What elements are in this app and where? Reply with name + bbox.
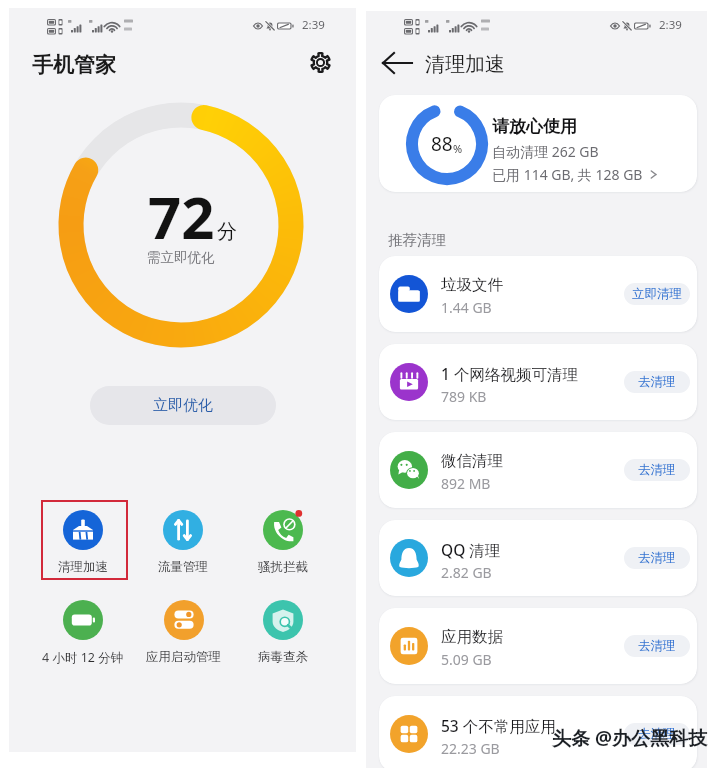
staticText: 需立即优化 <box>147 249 215 266</box>
staticText: % <box>453 141 463 156</box>
button[interactable]: 去清理 <box>624 635 690 657</box>
button[interactable]: 4 小时 12 分钟 <box>35 600 131 676</box>
staticText: 立即清理 <box>632 286 682 302</box>
button[interactable]: 去清理 <box>624 723 690 745</box>
button[interactable]: 去清理 <box>624 371 690 393</box>
button[interactable]: 应用启动管理 <box>135 600 231 676</box>
staticText: 72 <box>148 177 215 256</box>
button[interactable]: 立即清理 <box>624 283 690 305</box>
staticText: 4 小时 12 分钟 <box>42 649 124 666</box>
button[interactable]: 1 个网络视频可清理 <box>379 344 697 420</box>
button[interactable]: 应用数据 <box>379 608 697 684</box>
staticText: 手机管家 <box>32 52 116 78</box>
staticText: 垃圾文件 <box>441 275 503 295</box>
staticText: 22.23 GB <box>441 739 500 758</box>
staticText: 892 MB <box>441 474 491 493</box>
button[interactable]: 53 个不常用应用 <box>379 696 697 768</box>
button[interactable]: 去清理 <box>624 459 690 481</box>
button[interactable]: 骚扰拦截 <box>235 510 331 586</box>
staticText: 立即优化 <box>153 396 213 415</box>
button[interactable]: Settings <box>300 42 340 82</box>
staticText: 应用数据 <box>441 627 503 647</box>
staticText: 去清理 <box>638 638 676 654</box>
button[interactable]: 去清理 <box>624 547 690 569</box>
staticText: 去清理 <box>638 726 676 742</box>
button[interactable]: Back <box>373 39 421 87</box>
staticText: 应用启动管理 <box>146 649 221 665</box>
staticText: 2:39 <box>659 17 682 33</box>
staticText: 789 KB <box>441 387 487 406</box>
staticText: 1.44 GB <box>441 298 492 317</box>
staticText: 2.82 GB <box>441 563 492 582</box>
staticText: 2:39 <box>302 17 325 33</box>
staticText: 分 <box>217 219 237 244</box>
button[interactable]: 流量管理 <box>135 510 231 586</box>
button[interactable]: 微信清理 <box>379 432 697 508</box>
staticText: 53 个不常用应用 <box>441 715 556 736</box>
staticText: 去清理 <box>638 550 676 566</box>
staticText: 去清理 <box>638 462 676 478</box>
staticText: 自动清理 262 GB <box>492 142 599 161</box>
staticText: 微信清理 <box>441 451 503 471</box>
button[interactable]: 清理加速 <box>35 510 131 586</box>
button[interactable]: 垃圾文件 <box>379 256 697 332</box>
button[interactable]: 病毒查杀 <box>235 600 331 676</box>
staticText: 去清理 <box>638 374 676 390</box>
staticText: 流量管理 <box>158 559 208 575</box>
button[interactable]: 立即优化 <box>90 386 276 425</box>
staticText: 5.09 GB <box>441 650 492 669</box>
button[interactable]: QQ 清理 <box>379 520 697 596</box>
staticText: 清理加速 <box>425 52 505 77</box>
staticText: 病毒查杀 <box>258 649 308 665</box>
staticText: 推荐清理 <box>388 231 446 249</box>
staticText: 已用 114 GB, 共 128 GB <box>492 165 643 184</box>
staticText: 头条 @办公黑科技 <box>552 725 708 751</box>
staticText: 1 个网络视频可清理 <box>441 363 578 384</box>
staticText: QQ 清理 <box>441 539 501 560</box>
button[interactable]: 88 <box>379 95 697 192</box>
staticText: 骚扰拦截 <box>258 559 308 575</box>
staticText: 88 <box>431 131 453 157</box>
staticText: 清理加速 <box>58 559 108 575</box>
staticText: 请放心使用 <box>492 116 577 137</box>
